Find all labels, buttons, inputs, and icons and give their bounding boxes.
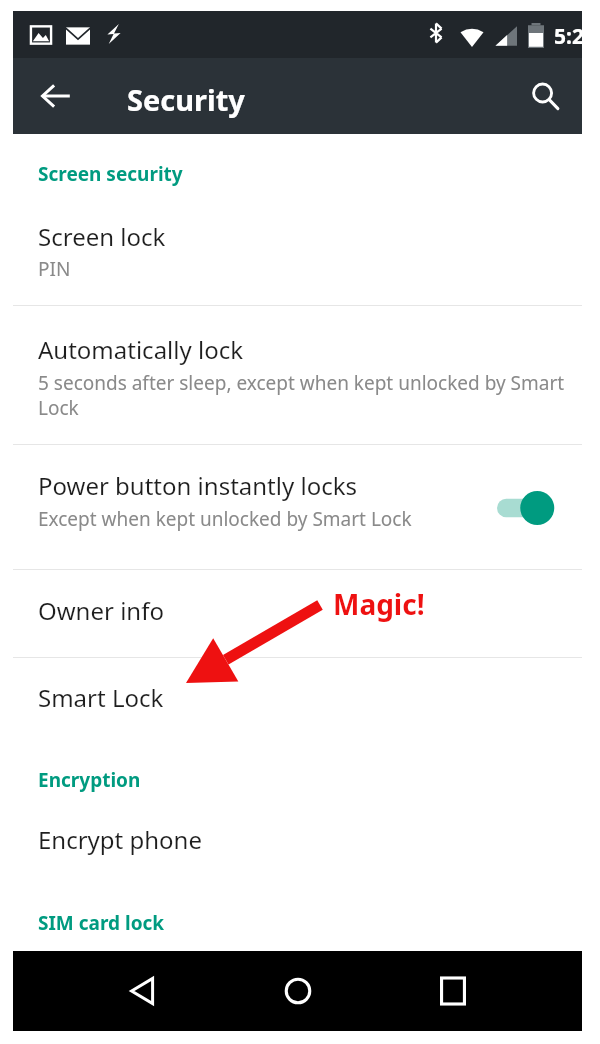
staticText: 5 seconds after sleep, except when kept …	[38, 370, 568, 421]
button[interactable]	[13, 805, 582, 867]
staticText: Encryption	[38, 767, 141, 793]
button[interactable]: Recent apps	[423, 961, 483, 1021]
button[interactable]	[13, 200, 582, 305]
staticText: Security	[127, 80, 245, 119]
button[interactable]	[13, 658, 582, 745]
button[interactable]: Search	[515, 66, 575, 126]
staticText: Magic!	[333, 585, 425, 623]
staticText: Owner info	[38, 594, 164, 627]
staticText: 5:26	[554, 22, 596, 51]
staticText: Smart Lock	[38, 681, 164, 714]
button[interactable]	[13, 306, 582, 444]
staticText: Except when kept unlocked by Smart Lock	[38, 506, 412, 532]
staticText: Screen security	[38, 161, 183, 187]
button[interactable]: Home	[268, 961, 328, 1021]
button[interactable]: Power button instantly locks toggle	[495, 485, 559, 531]
button[interactable]: Navigate up	[26, 66, 86, 126]
staticText: PIN	[38, 256, 71, 282]
staticText: Screen lock	[38, 220, 166, 253]
staticText: Power button instantly locks	[38, 469, 357, 502]
button[interactable]	[13, 570, 582, 657]
staticText: Automatically lock	[38, 333, 244, 366]
staticText: SIM card lock	[38, 910, 165, 936]
staticText: Encrypt phone	[38, 823, 202, 856]
button[interactable]: Back	[113, 961, 173, 1021]
button[interactable]	[13, 445, 582, 569]
